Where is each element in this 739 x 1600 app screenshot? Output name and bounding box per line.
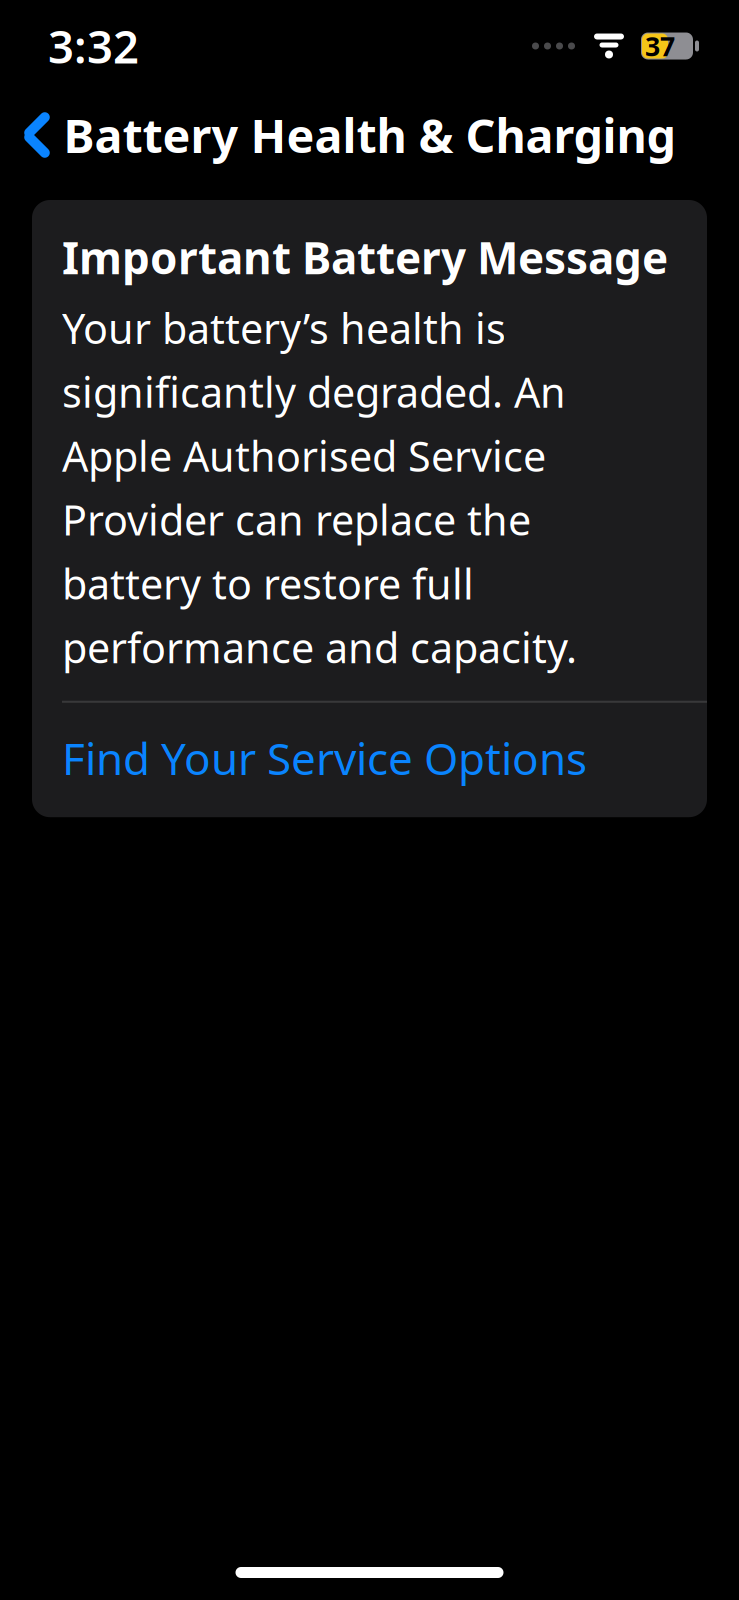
button[interactable]: Find Your Service Options <box>32 703 707 817</box>
staticText: Battery Health & Charging <box>63 104 675 166</box>
staticText: Your battery’s health is significantly d… <box>62 300 577 675</box>
staticText: 3:32 <box>48 16 139 76</box>
button[interactable]: Back <box>0 98 74 172</box>
staticText: 37 <box>645 28 675 64</box>
staticText: Your battery is currently supporting nor… <box>62 1446 504 1600</box>
staticText: Important Battery Message <box>62 228 668 286</box>
staticText: Find Your Service Options <box>62 729 587 787</box>
